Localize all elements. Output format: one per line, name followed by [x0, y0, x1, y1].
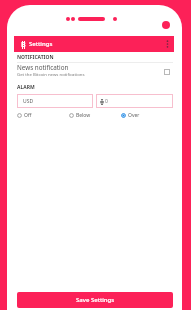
- button[interactable]: USD: [17, 94, 93, 108]
- staticText: Off: [24, 112, 32, 119]
- button[interactable]: News notification: [17, 63, 173, 79]
- staticText: Settings: [29, 40, 53, 48]
- staticText: B: [21, 40, 26, 49]
- button[interactable]: Save Settings: [17, 292, 173, 308]
- staticText: Get the Bitcoin news notifications: [17, 71, 85, 77]
- button[interactable]: Off: [17, 111, 69, 119]
- button[interactable]: Below: [69, 111, 121, 119]
- staticText: Over: [128, 112, 140, 119]
- staticText: Save Settings: [76, 296, 115, 304]
- staticText: ALARM: [17, 84, 35, 91]
- staticText: 0: [105, 98, 108, 105]
- button[interactable]: More options: [160, 36, 174, 52]
- staticText: USD: [23, 98, 34, 105]
- button[interactable]: Over: [121, 111, 173, 119]
- staticText: NOTIFICATION: [17, 54, 54, 61]
- staticText: Below: [76, 112, 91, 119]
- staticText: News notification: [17, 63, 69, 72]
- button[interactable]: 0: [96, 94, 173, 108]
- button[interactable]: B: [14, 36, 174, 52]
